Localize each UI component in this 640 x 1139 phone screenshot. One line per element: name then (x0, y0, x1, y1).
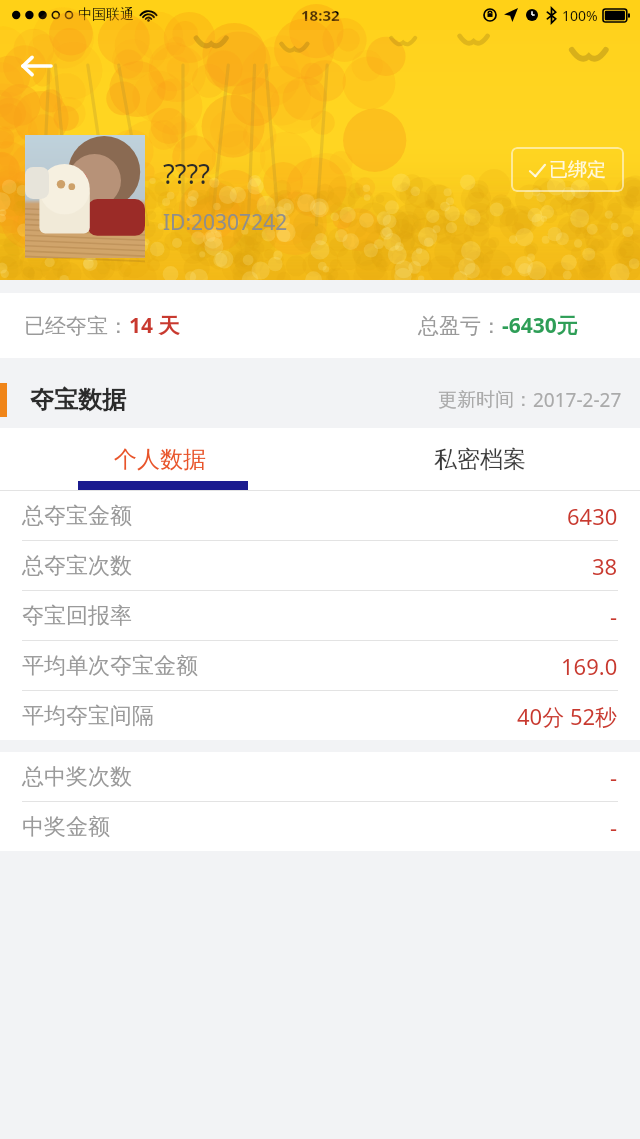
staticText: 更新时间： (438, 388, 533, 412)
button[interactable]: Profile photo (25, 135, 145, 258)
staticText: 14 天 (129, 311, 180, 340)
staticText: - (610, 601, 618, 631)
staticText: 已绑定 (549, 158, 606, 182)
staticText: 40分 52秒 (517, 701, 618, 731)
staticText: 平均夺宝间隔 (22, 702, 154, 730)
button[interactable]: 平均单次夺宝金额 (0, 641, 640, 690)
staticText: 夺宝数据 (30, 385, 126, 415)
button[interactable]: 总夺宝次数 (0, 541, 640, 590)
staticText: 中国联通 (78, 6, 134, 24)
staticText: 夺宝回报率 (22, 602, 132, 630)
staticText: 平均单次夺宝金额 (22, 652, 198, 680)
staticText: -6430元 (502, 311, 578, 340)
staticText: 18:32 (301, 5, 340, 25)
button[interactable]: 总中奖次数 (0, 752, 640, 801)
staticText: - (610, 812, 618, 842)
staticText: 总中奖次数 (22, 763, 132, 791)
button[interactable]: 个人数据 (0, 428, 320, 490)
staticText: 2017-2-27 (533, 387, 622, 413)
staticText: 个人数据 (114, 445, 206, 474)
staticText: 私密档案 (434, 445, 526, 474)
staticText: - (610, 762, 618, 792)
button[interactable]: 私密档案 (320, 428, 640, 490)
staticText: 已经夺宝： (24, 313, 129, 339)
staticText: ???? (163, 155, 210, 192)
staticText: 总夺宝金额 (22, 502, 132, 530)
staticText: 中奖金额 (22, 813, 110, 841)
staticText: 38 (592, 551, 618, 581)
button[interactable]: 夺宝回报率 (0, 591, 640, 640)
button[interactable]: 平均夺宝间隔 (0, 691, 640, 740)
staticText: 总夺宝次数 (22, 552, 132, 580)
staticText: 6430 (567, 501, 618, 531)
button[interactable]: 已绑定 (511, 147, 624, 192)
staticText: 总盈亏： (418, 313, 502, 339)
button[interactable]: 总夺宝金额 (0, 491, 640, 540)
staticText: 100% (562, 6, 598, 25)
button[interactable]: Back (12, 42, 60, 90)
staticText: 169.0 (561, 651, 618, 681)
staticText: ID:20307242 (163, 208, 288, 237)
button[interactable]: 中奖金额 (0, 802, 640, 851)
